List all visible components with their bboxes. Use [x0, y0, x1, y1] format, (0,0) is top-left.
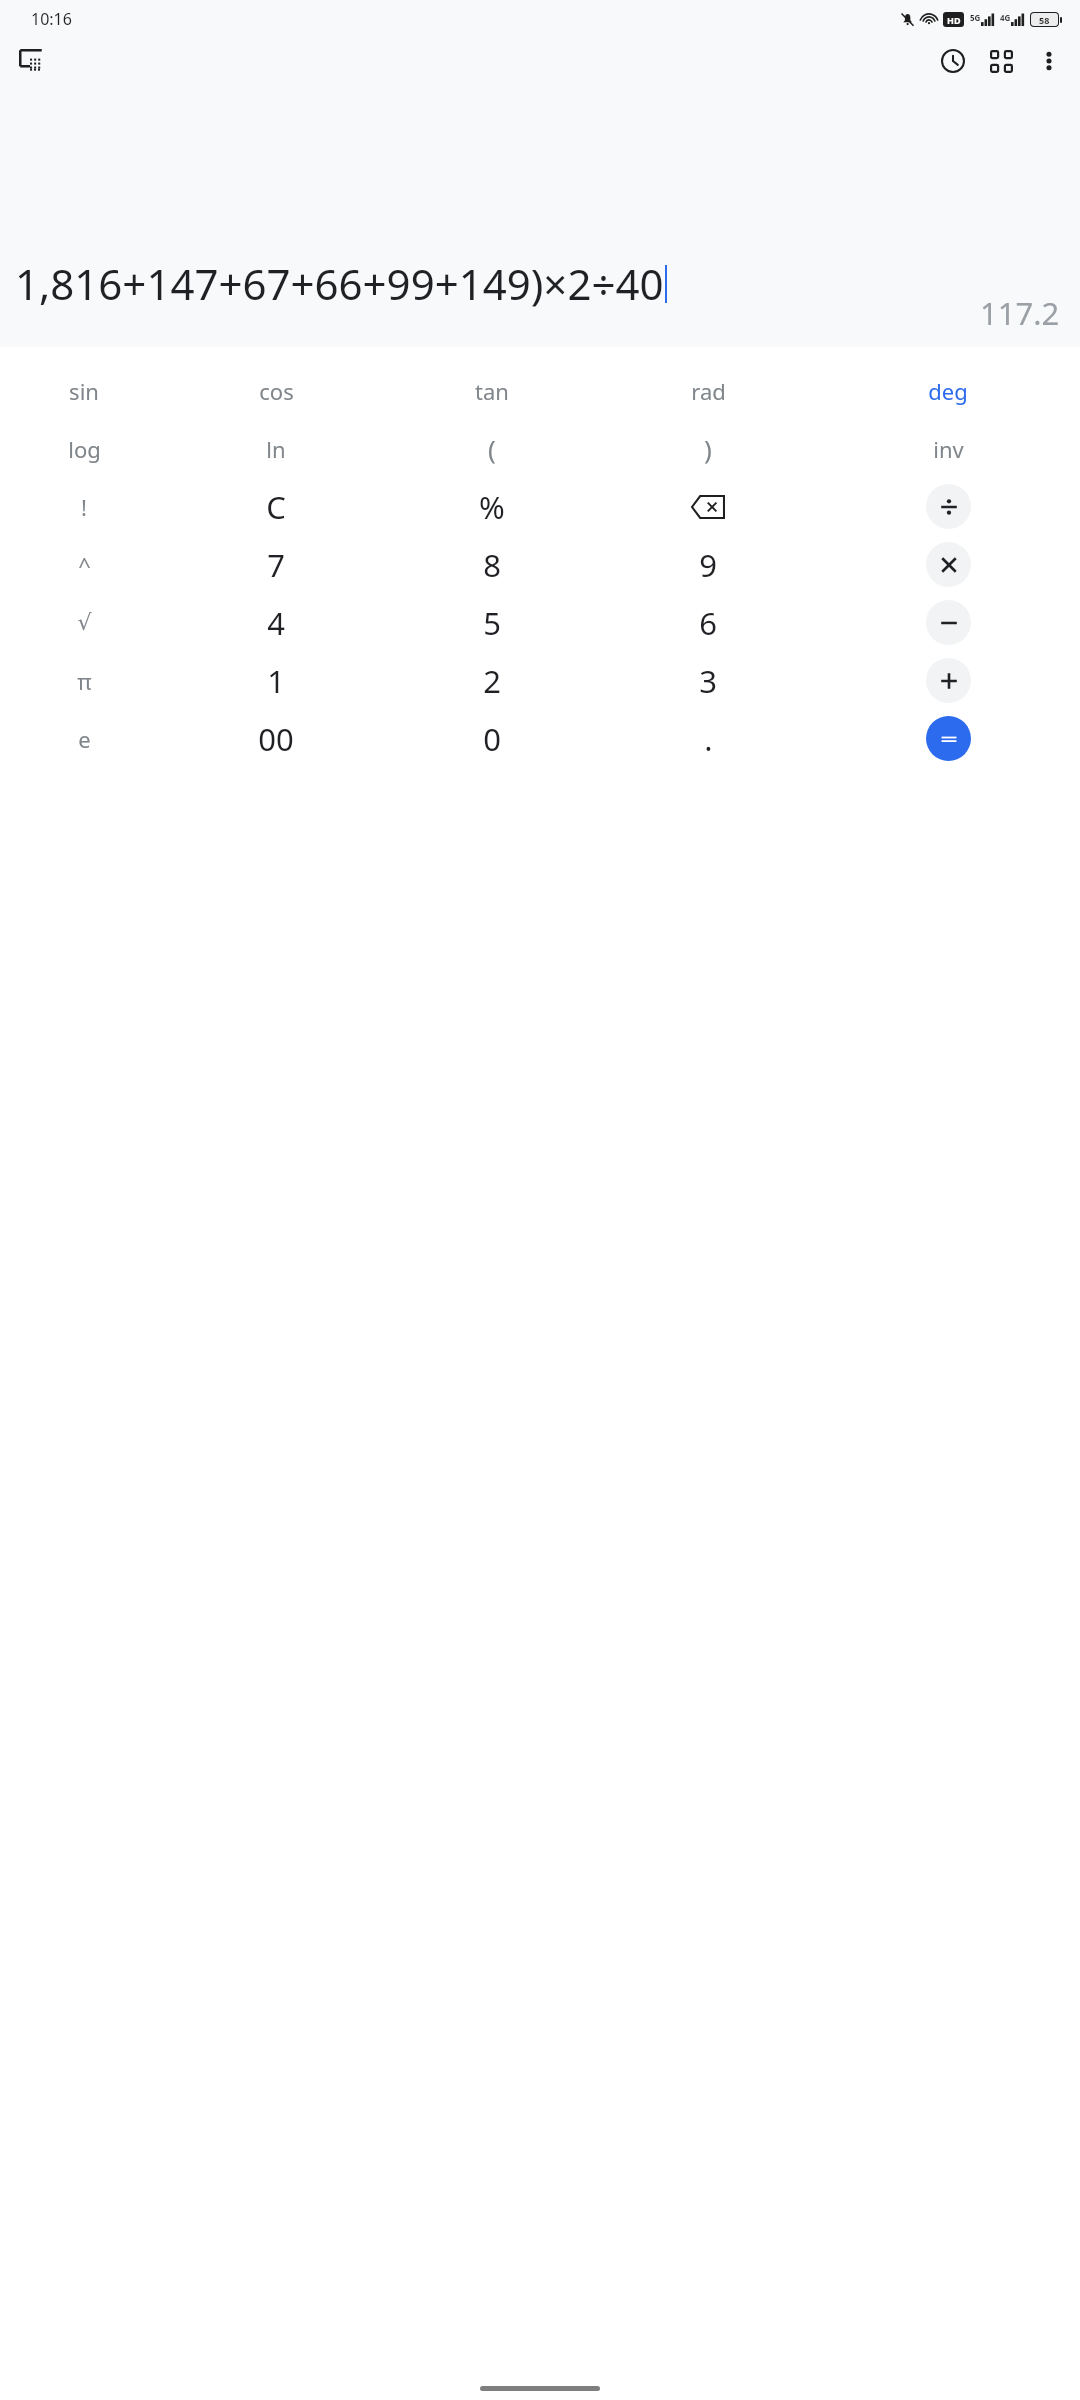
button[interactable]: tan — [456, 362, 528, 419]
button[interactable]: rad — [672, 362, 744, 419]
staticText: log — [68, 434, 101, 464]
staticText: 58 — [1039, 14, 1050, 26]
staticText: 4G — [1000, 12, 1011, 23]
button[interactable]: Operator + — [926, 658, 971, 703]
staticText: 7 — [267, 544, 285, 586]
button[interactable]: % — [452, 478, 532, 535]
button[interactable]: e — [48, 710, 120, 767]
button[interactable]: Unit converter — [977, 37, 1025, 85]
staticText: 2 — [483, 660, 501, 702]
button[interactable]: √ — [48, 594, 120, 651]
staticText: rad — [691, 376, 726, 406]
staticText: ) — [704, 431, 712, 466]
staticText: ln — [266, 434, 286, 464]
staticText: inv — [933, 434, 964, 464]
button[interactable]: 00 — [236, 710, 316, 767]
button[interactable]: 1 — [236, 652, 316, 709]
staticText: ( — [488, 431, 496, 466]
staticText: deg — [928, 376, 968, 406]
staticText: π — [77, 666, 92, 696]
staticText: 4 — [267, 602, 285, 644]
button[interactable]: 7 — [236, 536, 316, 593]
button[interactable]: cos — [240, 362, 312, 419]
button[interactable]: Operator × — [926, 542, 971, 587]
button[interactable]: C — [236, 478, 316, 535]
staticText: 9 — [699, 544, 717, 586]
button[interactable]: sin — [48, 362, 120, 419]
button[interactable]: . — [668, 710, 748, 767]
staticText: 1,816+147+67+66+99+149)×2÷40 — [15, 255, 664, 312]
staticText: 5 — [483, 602, 501, 644]
button[interactable]: 6 — [668, 594, 748, 651]
button[interactable]: ) — [672, 420, 744, 477]
staticText: 5G — [970, 12, 981, 23]
button[interactable]: ^ — [48, 536, 120, 593]
button[interactable]: 5 — [452, 594, 532, 651]
staticText: . — [704, 718, 713, 760]
staticText: sin — [69, 376, 99, 406]
staticText: ^ — [78, 550, 91, 580]
staticText: ! — [81, 492, 87, 522]
staticText: HD — [947, 14, 961, 26]
button[interactable]: ln — [240, 420, 312, 477]
staticText: % — [479, 486, 505, 528]
staticText: tan — [475, 376, 509, 406]
staticText: 00 — [258, 718, 294, 760]
staticText: 1 — [267, 660, 285, 702]
staticText: 8 — [483, 544, 501, 586]
button[interactable]: Operator − — [926, 600, 971, 645]
staticText: 117.2 — [980, 292, 1060, 334]
button[interactable]: π — [48, 652, 120, 709]
button[interactable]: 4 — [236, 594, 316, 651]
button[interactable]: ( — [456, 420, 528, 477]
button[interactable]: 2 — [452, 652, 532, 709]
staticText: 3 — [699, 660, 717, 702]
button[interactable]: log — [48, 420, 120, 477]
button[interactable]: ! — [48, 478, 120, 535]
staticText: 10:16 — [31, 8, 72, 30]
button[interactable]: 0 — [452, 710, 532, 767]
button[interactable]: Backspace — [668, 478, 748, 535]
staticText: e — [78, 724, 91, 754]
button[interactable]: History — [929, 37, 977, 85]
button[interactable]: Operator ÷ — [926, 484, 971, 529]
button[interactable]: Equals — [926, 716, 971, 761]
button[interactable]: 9 — [668, 536, 748, 593]
staticText: 0 — [483, 718, 501, 760]
button[interactable]: More options — [1025, 37, 1073, 85]
staticText: C — [266, 486, 286, 528]
staticText: √ — [77, 610, 92, 636]
staticText: 6 — [699, 602, 717, 644]
button[interactable]: 8 — [452, 536, 532, 593]
button[interactable]: Select mode — [7, 37, 55, 85]
button[interactable]: inv — [912, 420, 984, 477]
button[interactable]: deg — [912, 362, 984, 419]
staticText: cos — [259, 376, 294, 406]
button[interactable]: 3 — [668, 652, 748, 709]
